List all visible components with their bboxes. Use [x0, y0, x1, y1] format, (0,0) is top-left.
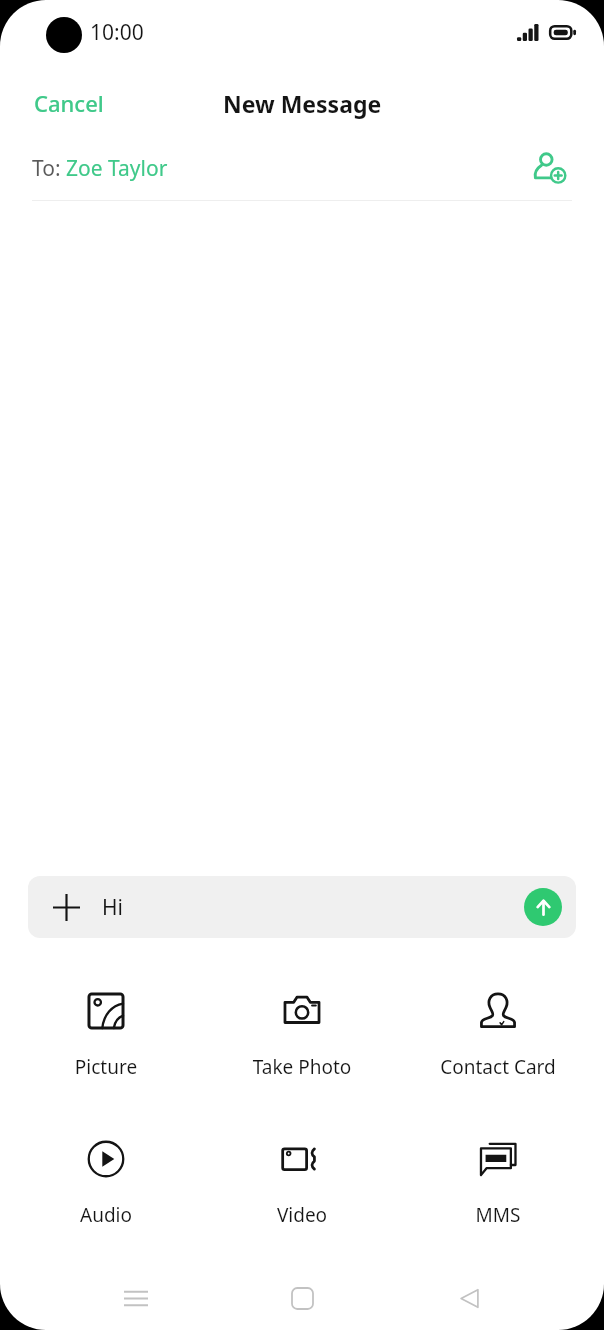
button[interactable]: Audio [16, 1132, 196, 1232]
button[interactable]: Back [438, 1267, 500, 1329]
button[interactable]: Cancel [0, 76, 138, 130]
staticText: Contact Card [408, 1054, 588, 1080]
other: Picture [83, 988, 129, 1034]
button[interactable]: To: [0, 136, 604, 200]
staticText: Take Photo [212, 1054, 392, 1080]
button[interactable]: Recents [105, 1267, 167, 1329]
other: Take Photo [279, 988, 325, 1034]
staticText: Zoe Taylor [66, 154, 168, 183]
button[interactable]: Take Photo [212, 984, 392, 1084]
staticText: Picture [16, 1054, 196, 1080]
other: MMS [475, 1136, 521, 1182]
button[interactable]: Video [212, 1132, 392, 1232]
button[interactable]: Add contact [526, 145, 572, 191]
staticText: Cancel [34, 88, 104, 118]
other: Audio [83, 1136, 129, 1182]
staticText: Video [212, 1202, 392, 1228]
other: Contact Card [475, 988, 521, 1034]
button[interactable]: Home [271, 1267, 333, 1329]
button[interactable]: Picture [16, 984, 196, 1084]
button[interactable]: MMS [408, 1132, 588, 1232]
staticText: 10:00 [90, 18, 144, 47]
staticText: To: [32, 154, 66, 183]
staticText: Audio [16, 1202, 196, 1228]
button[interactable]: Add attachment [48, 889, 84, 925]
button[interactable]: Add attachment [28, 876, 576, 938]
staticText: MMS [408, 1202, 588, 1228]
button[interactable]: Contact Card [408, 984, 588, 1084]
staticText: Hi [102, 893, 123, 922]
button[interactable]: Send [524, 888, 562, 926]
other: Video [279, 1136, 325, 1182]
staticText: New Message [223, 88, 382, 119]
